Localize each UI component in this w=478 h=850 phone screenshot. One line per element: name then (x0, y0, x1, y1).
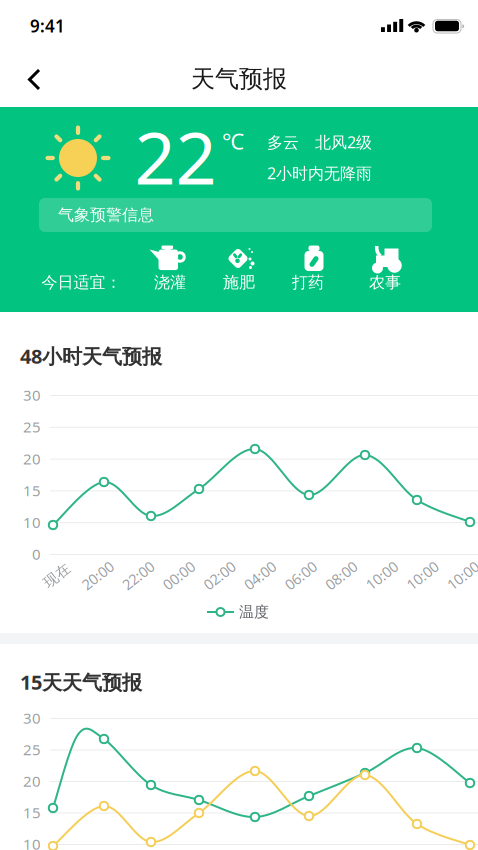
staticText: 温度 (239, 603, 269, 621)
button[interactable]: 气象预警信息 (39, 198, 432, 232)
staticText: 现在 (42, 566, 72, 585)
staticText: 20:00 (80, 566, 116, 585)
button[interactable]: 施肥 (217, 245, 261, 293)
staticText: 0 (32, 544, 41, 564)
staticText: 10:00 (364, 566, 400, 585)
staticText: 农事 (369, 272, 401, 293)
staticText: 2小时内无降雨 (267, 162, 372, 184)
staticText: 15 (23, 480, 41, 501)
staticText: 04:00 (242, 566, 278, 585)
staticText: 20 (23, 771, 41, 791)
staticText: 15天天气预报 (20, 668, 142, 696)
staticText: 30 (23, 385, 41, 405)
staticText: 20 (23, 448, 41, 469)
staticText: 08:00 (323, 566, 359, 585)
staticText: 10:00 (445, 566, 478, 585)
staticText: 22 (134, 107, 216, 206)
staticText: 22:00 (120, 566, 156, 585)
staticText: 06:00 (283, 566, 319, 585)
staticText: 00:00 (161, 566, 197, 585)
staticText: 10 (23, 834, 41, 850)
staticText: 浇灌 (154, 272, 186, 293)
button[interactable]: 打药 (286, 245, 330, 293)
staticText: 25 (23, 739, 41, 760)
staticText: 今日适宜： (41, 272, 121, 293)
staticText: 气象预警信息 (58, 205, 154, 225)
staticText: 9:41 (30, 14, 65, 38)
staticText: 10:00 (404, 566, 440, 585)
staticText: 施肥 (223, 272, 255, 293)
button[interactable]: Back (26, 67, 42, 91)
staticText: 02:00 (201, 566, 237, 585)
staticText: 天气预报 (191, 64, 287, 94)
staticText: 15 (23, 802, 41, 823)
staticText: 48小时天气预报 (20, 342, 162, 370)
staticText: ℃ (222, 126, 244, 156)
staticText: 25 (23, 417, 41, 437)
button[interactable]: 浇灌 (148, 245, 192, 293)
staticText: 打药 (292, 272, 324, 293)
staticText: 多云 北风2级 (267, 131, 372, 153)
button[interactable]: 农事 (363, 245, 407, 293)
staticText: 30 (23, 708, 41, 728)
staticText: 10 (23, 512, 41, 532)
